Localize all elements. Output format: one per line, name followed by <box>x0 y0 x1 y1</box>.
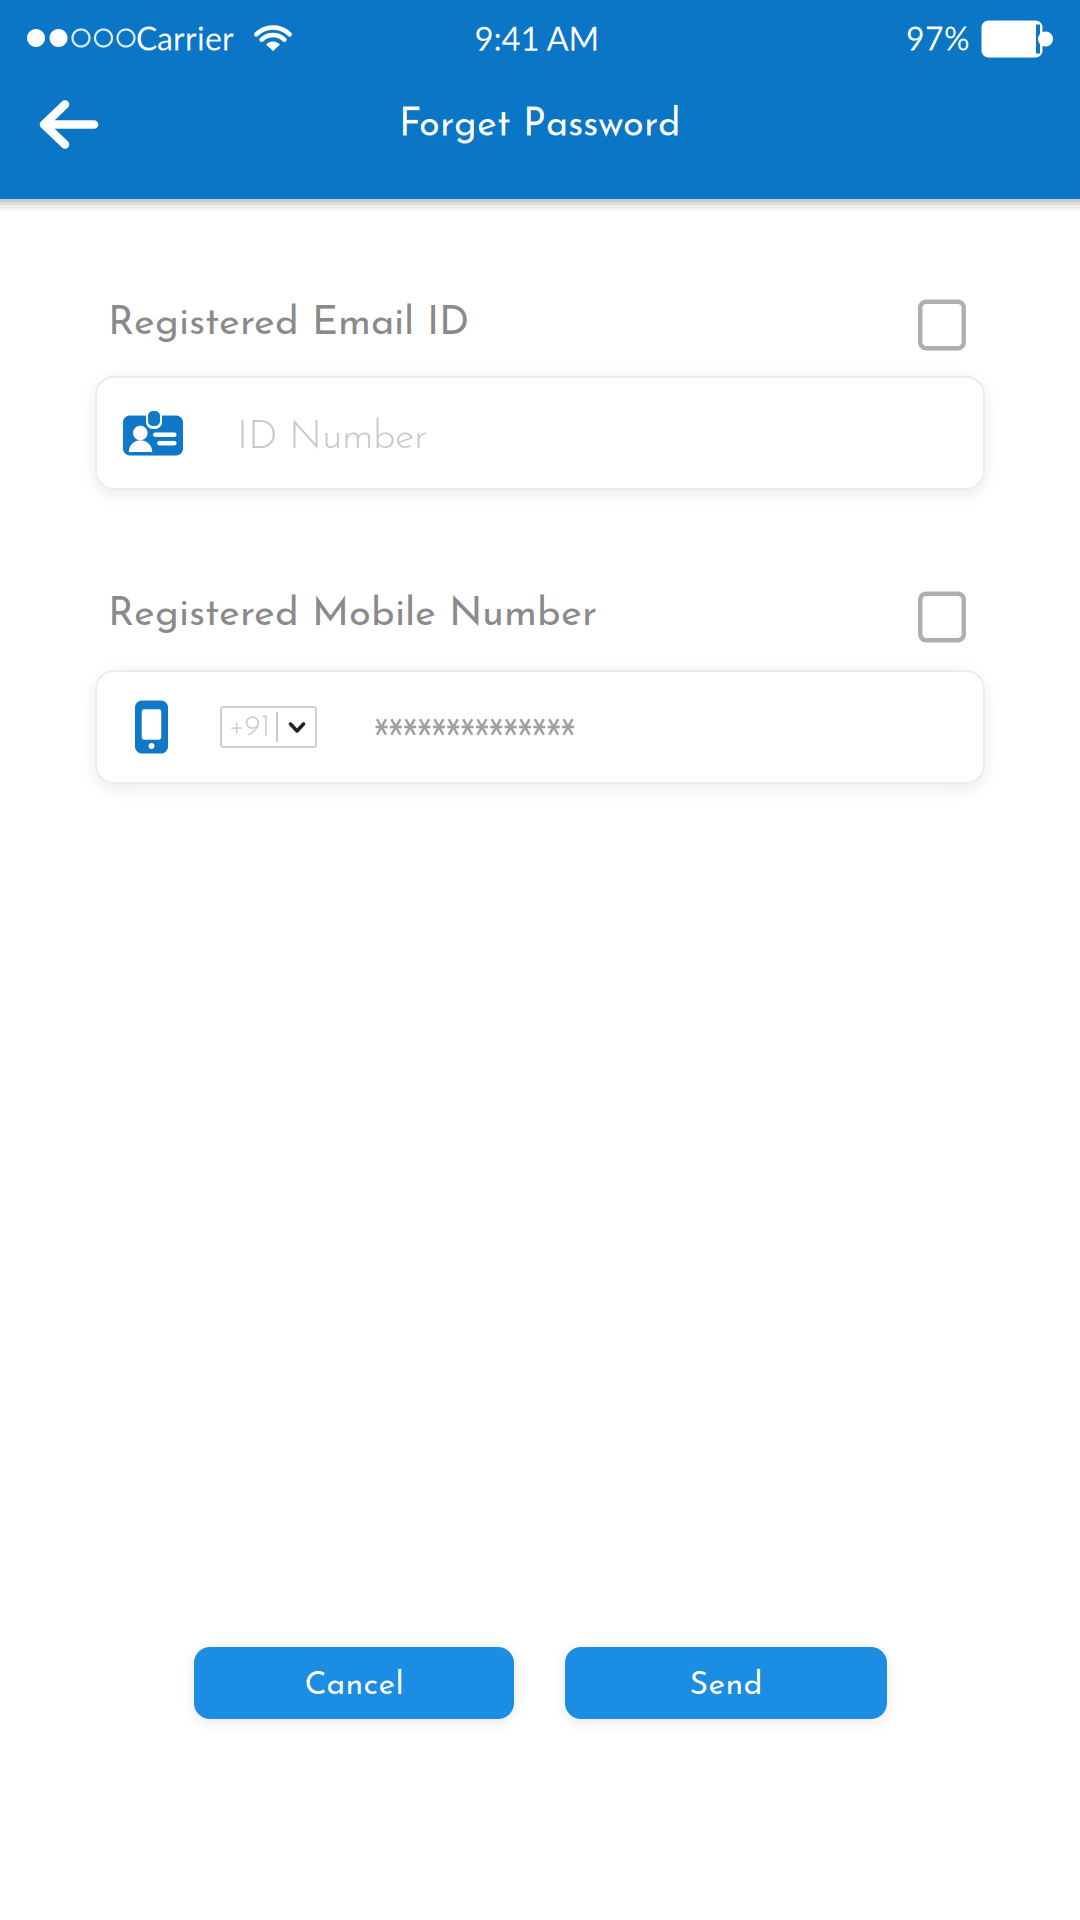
button[interactable]: Send <box>565 1647 887 1719</box>
button[interactable]: Back <box>40 101 98 147</box>
staticText: ID Number <box>237 418 428 458</box>
staticText: 9:41 AM <box>474 18 599 58</box>
staticText: Registered Email ID <box>108 304 469 344</box>
button[interactable]: Country code +91 <box>220 706 317 748</box>
button[interactable]: ID Number <box>95 376 985 490</box>
staticText: Send <box>689 1670 762 1702</box>
staticText: Cancel <box>304 1670 403 1702</box>
button[interactable] <box>95 670 985 784</box>
staticText: Carrier <box>136 19 234 57</box>
button[interactable]: Use registered mobile number <box>918 591 966 642</box>
button[interactable]: Use registered email ID <box>918 299 966 350</box>
staticText: Registered Mobile Number <box>108 595 597 635</box>
button[interactable]: Cancel <box>194 1647 514 1719</box>
staticText: Forget Password <box>399 107 681 145</box>
staticText: +91 <box>228 713 269 743</box>
staticText: 97% <box>906 19 970 57</box>
